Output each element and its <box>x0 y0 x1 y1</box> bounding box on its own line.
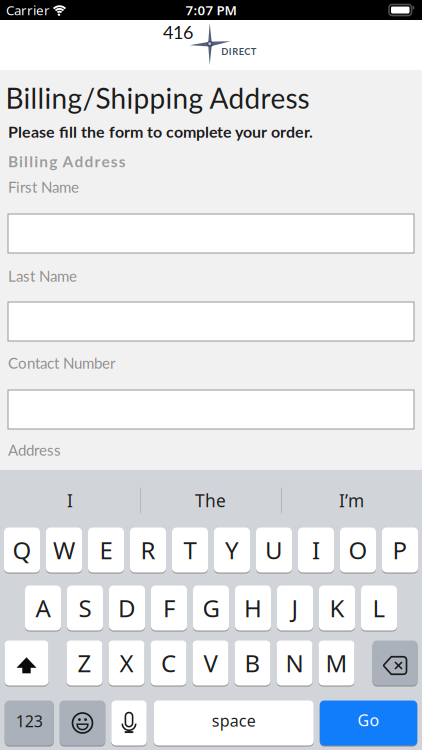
staticText: Z <box>77 647 91 679</box>
staticText: Address <box>8 441 61 459</box>
staticText: S <box>78 592 91 624</box>
button[interactable]: L <box>361 585 397 631</box>
staticText: O <box>348 534 367 566</box>
staticText: Q <box>12 534 31 566</box>
staticText: 123 <box>16 710 43 732</box>
button[interactable]: V <box>192 640 228 686</box>
staticText: Y <box>225 534 239 566</box>
staticText: R <box>140 534 155 566</box>
button[interactable]: F <box>151 585 187 631</box>
staticText: The <box>195 489 226 512</box>
button[interactable]: Q <box>4 527 40 573</box>
staticText: I <box>67 489 73 512</box>
staticText: F <box>163 592 175 624</box>
staticText: First Name <box>8 178 79 196</box>
staticText: Last Name <box>8 267 77 285</box>
button[interactable]: U <box>256 527 292 573</box>
staticText: D <box>118 592 136 624</box>
staticText: DIRECT <box>221 46 257 57</box>
button[interactable]: B <box>234 640 270 686</box>
staticText: Go <box>357 709 379 731</box>
button[interactable]: O <box>340 527 376 573</box>
staticText: 7:07 PM <box>185 1 236 19</box>
button[interactable]: The <box>140 478 281 523</box>
staticText: N <box>285 647 303 679</box>
button[interactable]: First Name <box>8 214 414 253</box>
staticText: Carrier <box>6 1 50 19</box>
button[interactable]: H <box>235 585 271 631</box>
staticText: M <box>325 647 347 679</box>
button[interactable]: Shift <box>4 640 48 686</box>
staticText: X <box>119 647 133 679</box>
staticText: U <box>265 534 283 566</box>
staticText: Contact Number <box>8 354 115 372</box>
staticText: J <box>291 592 298 624</box>
button[interactable]: Contact Number <box>8 390 414 429</box>
button[interactable]: C <box>150 640 186 686</box>
staticText: H <box>244 592 262 624</box>
button[interactable]: J <box>277 585 313 631</box>
staticText: W <box>53 534 75 566</box>
button[interactable]: I <box>0 478 140 523</box>
button[interactable]: Emoji <box>60 700 105 746</box>
button[interactable]: Last Name <box>8 302 414 341</box>
staticText: Billing Address <box>8 152 126 171</box>
staticText: Please fill the form to complete your or… <box>8 122 313 141</box>
button[interactable]: Numbers <box>5 700 54 746</box>
staticText: K <box>329 592 344 624</box>
staticText: E <box>99 534 112 566</box>
staticText: A <box>35 592 50 624</box>
staticText: I’m <box>339 489 364 512</box>
button[interactable]: W <box>46 527 82 573</box>
button[interactable]: P <box>382 527 418 573</box>
button[interactable]: K <box>319 585 355 631</box>
staticText: I <box>312 534 320 566</box>
staticText: L <box>372 592 385 624</box>
button[interactable]: M <box>318 640 354 686</box>
button[interactable]: G <box>193 585 229 631</box>
button[interactable]: I’m <box>281 478 422 523</box>
staticText: V <box>203 647 217 679</box>
button[interactable]: I <box>298 527 334 573</box>
button[interactable]: T <box>172 527 208 573</box>
staticText: G <box>202 592 219 624</box>
staticText: space <box>212 710 256 731</box>
button[interactable]: E <box>88 527 124 573</box>
staticText: Billing/Shipping Address <box>5 81 309 115</box>
button[interactable]: Dictate <box>111 700 147 746</box>
staticText: T <box>183 534 196 566</box>
button[interactable]: Delete <box>372 640 417 686</box>
staticText: C <box>161 647 176 679</box>
staticText: B <box>244 647 260 679</box>
button[interactable]: Go <box>320 700 417 746</box>
button[interactable]: X <box>108 640 144 686</box>
button[interactable]: R <box>130 527 166 573</box>
button[interactable]: Y <box>214 527 250 573</box>
staticText: P <box>392 534 407 566</box>
button[interactable]: N <box>276 640 312 686</box>
button[interactable]: A <box>25 585 61 631</box>
button[interactable]: D <box>109 585 145 631</box>
button[interactable]: space <box>154 700 314 746</box>
button[interactable]: Z <box>66 640 102 686</box>
staticText: 416 <box>163 21 193 43</box>
button[interactable]: S <box>67 585 103 631</box>
